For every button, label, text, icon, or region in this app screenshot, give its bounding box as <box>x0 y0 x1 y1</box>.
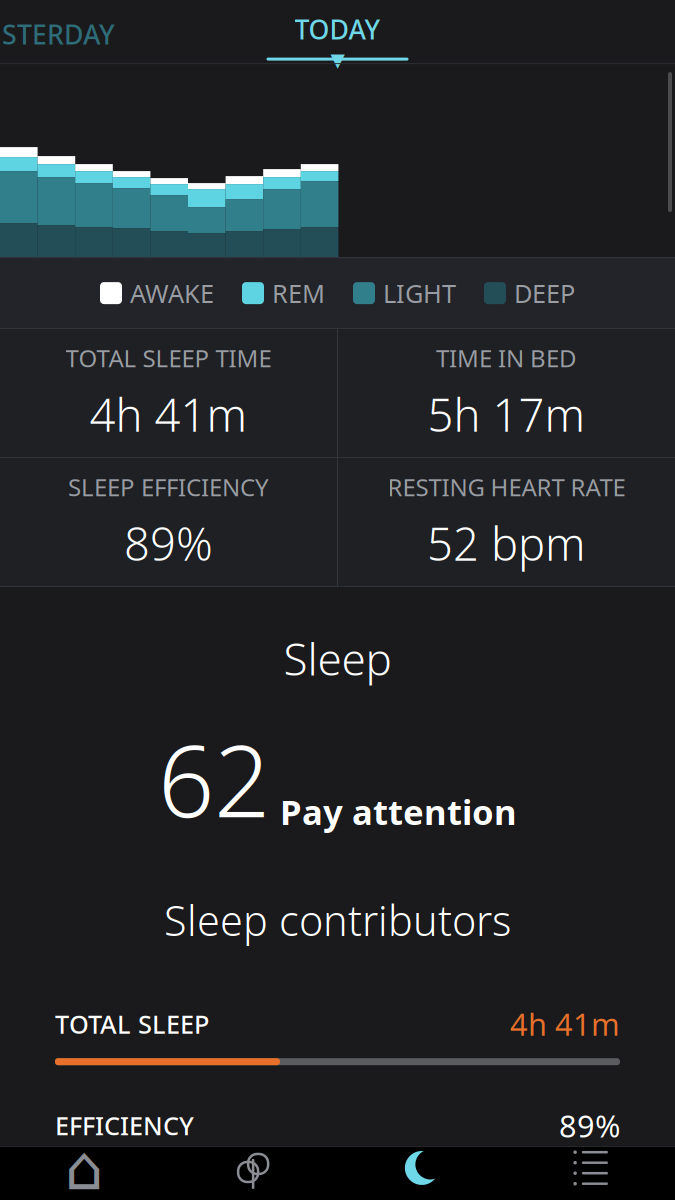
button[interactable]: Sleep <box>337 1146 506 1200</box>
staticText: Sleep <box>283 629 391 687</box>
staticText: AWAKE <box>130 276 214 310</box>
staticText: REM <box>272 276 325 310</box>
staticText: ▼ <box>330 49 344 71</box>
button[interactable]: Activity <box>506 1146 675 1200</box>
staticText: TOTAL SLEEP <box>55 1007 209 1041</box>
staticText: Sleep contributors <box>164 893 511 947</box>
staticText: TODAY <box>294 11 380 47</box>
staticText: 62 <box>158 713 270 844</box>
button[interactable]: TODAY <box>262 4 412 54</box>
staticText: LIGHT <box>383 276 456 310</box>
staticText: 4h 41m <box>89 384 247 444</box>
button[interactable]: Readiness <box>169 1146 338 1200</box>
staticText: EFFICIENCY <box>55 1109 194 1142</box>
staticText: ⌂ <box>65 1133 104 1200</box>
staticText: 89% <box>124 513 213 573</box>
staticText: TOTAL SLEEP TIME <box>65 342 271 374</box>
staticText: Pay attention <box>280 788 517 834</box>
staticText: DEEP <box>514 276 575 310</box>
staticText: 4h 41m <box>510 1003 620 1044</box>
staticText: SLEEP EFFICIENCY <box>68 471 269 503</box>
button[interactable]: Home <box>0 1146 169 1200</box>
staticText: TIME IN BED <box>436 342 577 374</box>
button[interactable]: STERDAY <box>2 7 142 61</box>
staticText: 89% <box>559 1105 620 1146</box>
staticText: STERDAY <box>2 16 115 52</box>
staticText: 52 bpm <box>427 513 586 573</box>
staticText: RESTING HEART RATE <box>387 471 625 503</box>
staticText: 5h 17m <box>427 384 585 444</box>
